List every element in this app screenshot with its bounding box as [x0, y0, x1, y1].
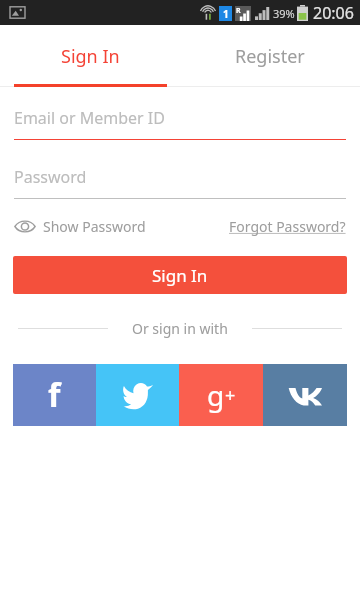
- button[interactable]: Sign In: [13, 256, 347, 294]
- staticText: Email or Member ID: [14, 107, 165, 129]
- button[interactable]: Sign in with Twitter: [96, 364, 179, 426]
- staticText: Register: [235, 44, 305, 69]
- staticText: Or sign in with: [132, 319, 228, 338]
- button[interactable]: Sign in with Facebook: [13, 364, 96, 426]
- staticText: 1: [223, 7, 229, 21]
- staticText: Forgot Password?: [229, 217, 346, 236]
- staticText: 20:06: [313, 2, 354, 24]
- staticText: Sign In: [152, 264, 208, 287]
- staticText: R: [236, 6, 241, 16]
- button[interactable]: Email or Member ID: [14, 105, 346, 131]
- button[interactable]: Show Password: [14, 217, 146, 236]
- button[interactable]: Sign in with Google Plus: [179, 364, 263, 426]
- button[interactable]: Register: [180, 25, 360, 87]
- button[interactable]: Password: [14, 164, 346, 190]
- staticText: Sign In: [61, 44, 120, 69]
- staticText: Show Password: [43, 217, 146, 236]
- other: Show Password: [14, 219, 36, 234]
- button[interactable]: Sign In: [0, 25, 180, 87]
- staticText: Password: [14, 166, 87, 188]
- staticText: f: [48, 373, 61, 417]
- staticText: +: [225, 383, 236, 408]
- button[interactable]: Sign in with VK: [263, 364, 347, 426]
- staticText: g: [207, 376, 225, 414]
- button[interactable]: Forgot Password?: [229, 217, 346, 236]
- staticText: 39%: [273, 6, 295, 21]
